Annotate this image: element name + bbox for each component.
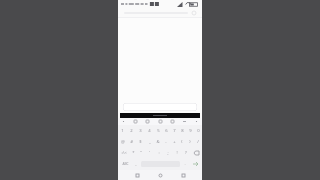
- button[interactable]: $: [136, 136, 145, 147]
- staticText: 5: [157, 128, 160, 134]
- button[interactable]: 5: [154, 125, 162, 136]
- button[interactable]: Message input: [123, 103, 197, 111]
- staticText: 8: [181, 128, 184, 134]
- button[interactable]: Recents: [179, 171, 187, 179]
- staticText: (: [181, 139, 183, 145]
- button[interactable]: Enter: [189, 159, 202, 169]
- button[interactable]: Keyboard tool 5: [182, 119, 187, 124]
- button[interactable]: ": [137, 147, 145, 158]
- button[interactable]: Keyboard tool 1: [133, 119, 138, 124]
- staticText: .: [184, 161, 186, 167]
- staticText: ": [140, 150, 142, 156]
- staticText: -: [165, 139, 167, 145]
- button[interactable]: *: [129, 147, 137, 158]
- staticText: +: [173, 139, 176, 145]
- staticText: 9: [189, 128, 192, 134]
- staticText: #: [130, 139, 133, 145]
- staticText: 0: [197, 128, 200, 134]
- staticText: !: [176, 150, 178, 156]
- button[interactable]: ): [186, 136, 194, 147]
- button[interactable]: 8: [178, 125, 186, 136]
- button[interactable]: &: [154, 136, 162, 147]
- button[interactable]: +: [170, 136, 178, 147]
- button[interactable]: ABC: [118, 159, 132, 169]
- button[interactable]: 7: [170, 125, 178, 136]
- button[interactable]: !: [172, 147, 181, 158]
- button[interactable]: ': [145, 147, 154, 158]
- button[interactable]: 0: [194, 125, 202, 136]
- button[interactable]: Keyboard tool 3: [158, 119, 163, 124]
- button[interactable]: #: [127, 136, 136, 147]
- button[interactable]: Keyboard tool 0: [121, 119, 126, 124]
- staticText: 3: [139, 128, 142, 134]
- button[interactable]: 1: [118, 125, 127, 136]
- button[interactable]: 6: [162, 125, 170, 136]
- staticText: ABC: [122, 162, 129, 166]
- button[interactable]: _: [145, 136, 154, 147]
- button[interactable]: Keyboard tool 2: [145, 119, 150, 124]
- staticText: ;: [167, 150, 169, 156]
- staticText: :: [158, 150, 160, 156]
- button[interactable]: 4: [145, 125, 154, 136]
- button[interactable]: /: [194, 136, 202, 147]
- button[interactable]: =\<: [118, 147, 129, 158]
- button[interactable]: 2: [127, 125, 136, 136]
- staticText: 4: [148, 128, 151, 134]
- button[interactable]: (: [178, 136, 186, 147]
- button[interactable]: 3: [136, 125, 145, 136]
- staticText: 1: [121, 128, 124, 134]
- button[interactable]: Keyboard tool 4: [170, 119, 175, 124]
- button[interactable]: @: [118, 136, 127, 147]
- staticText: /: [197, 139, 199, 145]
- button[interactable]: 9: [186, 125, 194, 136]
- staticText: ?: [185, 150, 187, 156]
- staticText: ,: [135, 161, 137, 167]
- button[interactable]: Backspace: [190, 147, 202, 158]
- staticText: 2: [130, 128, 133, 134]
- staticText: 7: [173, 128, 176, 134]
- button[interactable]: ?: [181, 147, 190, 158]
- button[interactable]: ;: [163, 147, 172, 158]
- staticText: =\<: [121, 150, 127, 155]
- staticText: @: [121, 139, 125, 145]
- button[interactable]: Keyboard tool 6: [194, 119, 199, 124]
- staticText: $: [139, 139, 142, 145]
- button[interactable]: Home: [156, 171, 164, 179]
- staticText: ): [189, 139, 191, 145]
- button[interactable]: Back: [133, 171, 141, 179]
- staticText: _: [149, 139, 151, 145]
- staticText: &: [156, 139, 160, 145]
- staticText: 6: [165, 128, 168, 134]
- button[interactable]: Search field: [118, 8, 202, 17]
- staticText: *: [132, 150, 135, 156]
- staticText: ': [149, 150, 150, 156]
